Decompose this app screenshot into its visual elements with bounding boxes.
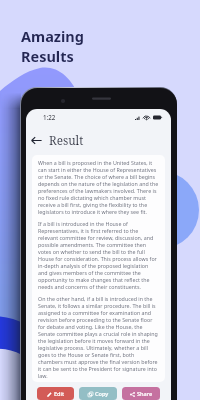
button[interactable]: Edit xyxy=(37,387,74,400)
button[interactable]: Share xyxy=(122,387,160,400)
staticText: Share xyxy=(137,390,153,398)
staticText: When a bill is proposed in the United St… xyxy=(38,159,159,215)
staticText: On the other hand, if a bill is introduc… xyxy=(38,295,159,379)
staticText: Edit xyxy=(54,390,65,398)
staticText: Results xyxy=(21,46,74,66)
button[interactable]: Copy xyxy=(79,387,117,400)
staticText: If a bill is introduced in the House of … xyxy=(38,220,159,290)
staticText: Copy xyxy=(95,390,109,398)
staticText: 1:22 xyxy=(43,113,56,121)
staticText: Result xyxy=(49,132,84,148)
button[interactable]: Back xyxy=(29,133,43,147)
staticText: Amazing xyxy=(21,26,84,46)
